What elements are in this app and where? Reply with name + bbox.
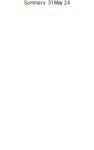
staticText: Summary 31 May 24 (24, 0, 70, 5)
